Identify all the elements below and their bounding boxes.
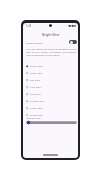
staticText: 1:45 (26, 24, 32, 28)
staticText: You can reduce eye strain by adapting a … (26, 47, 77, 50)
button[interactable]: Gray light (26, 90, 76, 97)
button[interactable]: Sepia Paper (26, 62, 76, 69)
staticText: Moss Light (30, 71, 43, 74)
staticText: Cool light (30, 85, 41, 88)
staticText: Brown light (30, 113, 43, 116)
staticText: Bright filter (42, 33, 60, 37)
staticText: can be adjusted to your liking. (26, 53, 60, 56)
button[interactable]: Brown light (26, 111, 76, 118)
staticText: Orange light (30, 99, 45, 102)
staticText: Gray light (30, 92, 41, 95)
staticText: filter to your screen. In addition, the … (26, 50, 77, 53)
staticText: Enable feature (26, 41, 43, 44)
staticText: Green light (30, 106, 43, 109)
staticText: Sepia Paper (30, 64, 44, 67)
staticText: Red light (30, 78, 40, 81)
button[interactable]: Cool light (26, 83, 76, 90)
button[interactable]: Green light (26, 104, 76, 111)
button[interactable]: Moss Light (26, 69, 76, 76)
staticText: Intensity level (26, 117, 41, 120)
button[interactable]: Enable feature (26, 39, 77, 45)
button[interactable]: Red light (26, 76, 76, 83)
button[interactable]: Orange light (26, 97, 76, 104)
